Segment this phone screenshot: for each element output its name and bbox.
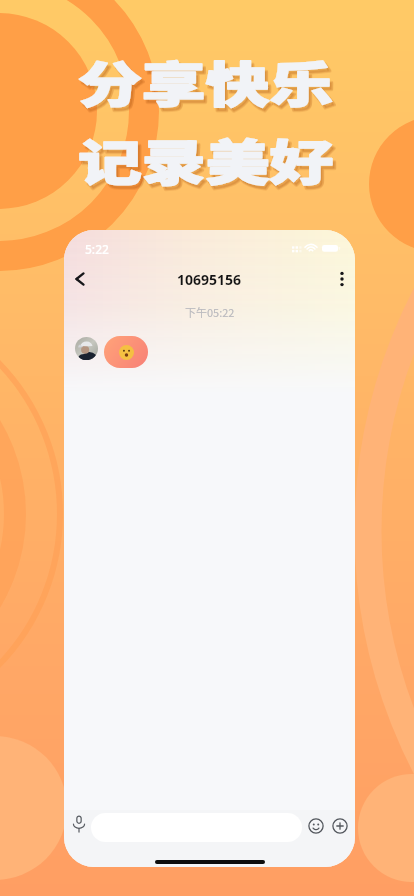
button[interactable]: Back [64, 259, 100, 299]
staticText: 5:22 [85, 241, 109, 257]
staticText: 分享快乐 [78, 46, 335, 116]
button[interactable] [104, 336, 148, 368]
staticText: 分享快乐 [81, 50, 337, 120]
staticText: 记录美好 [81, 127, 337, 197]
staticText: 分享快乐 [81, 50, 337, 120]
staticText: 分享快乐 [78, 46, 335, 116]
staticText: 分享快乐 [81, 49, 337, 119]
staticText: 10695156 [177, 270, 242, 289]
staticText: 下午05:22 [185, 304, 235, 320]
button[interactable]: Add attachment [329, 815, 351, 837]
button[interactable]: Voice message [66, 811, 92, 837]
staticText: 分享快乐 [81, 49, 337, 119]
staticText: 记录美好 [78, 124, 335, 194]
button[interactable]: More options [326, 263, 355, 295]
staticText: 记录美好 [81, 128, 337, 198]
staticText: 记录美好 [81, 127, 337, 197]
button[interactable]: Emoji [305, 815, 327, 837]
staticText: 记录美好 [78, 124, 335, 194]
staticText: 记录美好 [81, 128, 337, 198]
